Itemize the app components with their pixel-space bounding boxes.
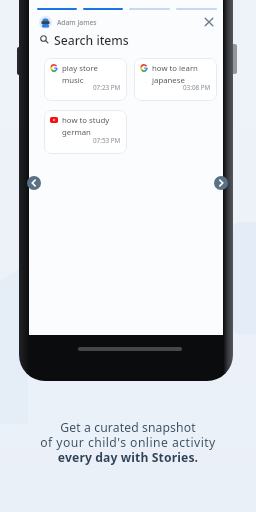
staticText: how to learn japanese	[152, 63, 198, 85]
button[interactable]	[27, 176, 41, 190]
staticText: Get a curated snapshot of your child's o…	[40, 419, 216, 466]
staticText: how to study german	[62, 115, 110, 137]
staticText: 07:53 PM	[93, 136, 121, 145]
button[interactable]: how to learn japanese	[134, 58, 217, 101]
staticText: play store music	[62, 63, 98, 85]
staticText: Search items	[54, 32, 129, 46]
staticText: Adam James	[57, 18, 97, 27]
staticText: 03:08 PM	[183, 83, 211, 92]
staticText: 07:23 PM	[93, 83, 121, 92]
button[interactable]: play store music	[44, 58, 127, 101]
button[interactable]	[201, 14, 217, 30]
button[interactable]	[214, 176, 228, 190]
button[interactable]: how to study german	[44, 110, 127, 154]
